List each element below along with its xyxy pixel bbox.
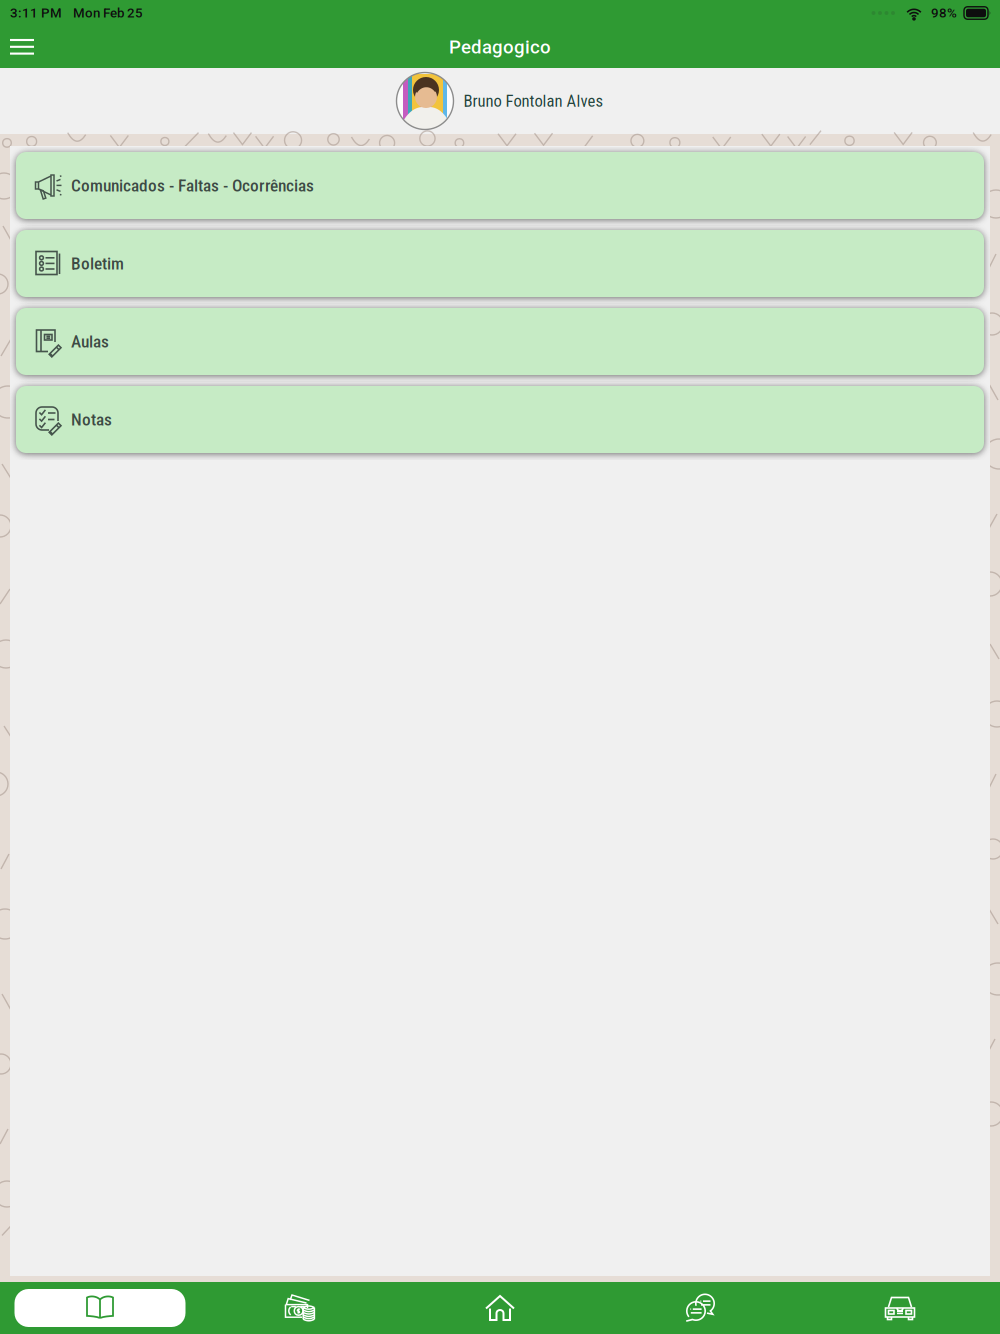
staticText: Bruno Fontolan Alves bbox=[463, 91, 603, 111]
button[interactable]: Bruno Fontolan Alves bbox=[0, 68, 1000, 134]
staticText: 98% bbox=[931, 5, 957, 21]
button[interactable]: Início bbox=[400, 1282, 600, 1334]
staticText: Boletim bbox=[71, 253, 124, 274]
staticText: Aulas bbox=[71, 331, 109, 352]
staticText: Comunicados - Faltas - Ocorrências bbox=[71, 175, 314, 196]
button[interactable]: Aulas bbox=[16, 308, 984, 375]
button[interactable]: Comunicados - Faltas - Ocorrências bbox=[16, 152, 984, 219]
staticText: Mon Feb 25 bbox=[73, 5, 143, 21]
button[interactable]: Menu bbox=[0, 27, 50, 67]
button[interactable]: Transporte bbox=[800, 1282, 1000, 1334]
button[interactable]: Pedagógico bbox=[0, 1282, 200, 1334]
button[interactable]: Mensagens bbox=[600, 1282, 800, 1334]
staticText: 3:11 PM bbox=[10, 5, 62, 21]
staticText: Notas bbox=[71, 409, 112, 430]
staticText: Pedagogico bbox=[449, 36, 551, 58]
button[interactable]: Boletim bbox=[16, 230, 984, 297]
button[interactable]: Notas bbox=[16, 386, 984, 453]
button[interactable]: Financeiro bbox=[200, 1282, 400, 1334]
